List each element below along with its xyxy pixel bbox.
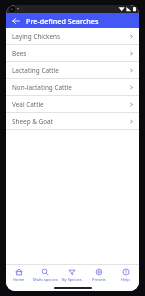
button[interactable]: Lactating Cattle	[6, 62, 139, 79]
staticText: Sheep & Goat	[12, 117, 129, 126]
button[interactable]: Non-lactating Cattle	[6, 79, 139, 96]
button[interactable]: Help	[112, 265, 139, 285]
staticText: Presets	[92, 277, 106, 282]
staticText: Bees	[12, 49, 129, 58]
button[interactable]: Back	[9, 14, 22, 27]
button[interactable]: Laying Chickens	[6, 28, 139, 45]
staticText: Laying Chickens	[12, 32, 129, 41]
button[interactable]: Bees	[6, 45, 139, 62]
button[interactable]: Multi-species	[32, 265, 58, 285]
button[interactable]: Sheep & Goat	[6, 113, 139, 130]
staticText: Veal Cattle	[12, 100, 129, 109]
button[interactable]: Veal Cattle	[6, 96, 139, 113]
staticText: Pre-defined Searches	[26, 16, 99, 26]
staticText: Non-lactating Cattle	[12, 83, 129, 92]
button[interactable]: By Species	[58, 265, 85, 285]
staticText: Multi-species	[33, 277, 58, 282]
staticText: By Species	[62, 277, 82, 282]
staticText: Home	[13, 277, 25, 282]
staticText: Help	[121, 277, 130, 282]
staticText: Lactating Cattle	[12, 66, 129, 75]
button[interactable]: Presets	[85, 265, 112, 285]
button[interactable]: Home	[6, 265, 32, 285]
